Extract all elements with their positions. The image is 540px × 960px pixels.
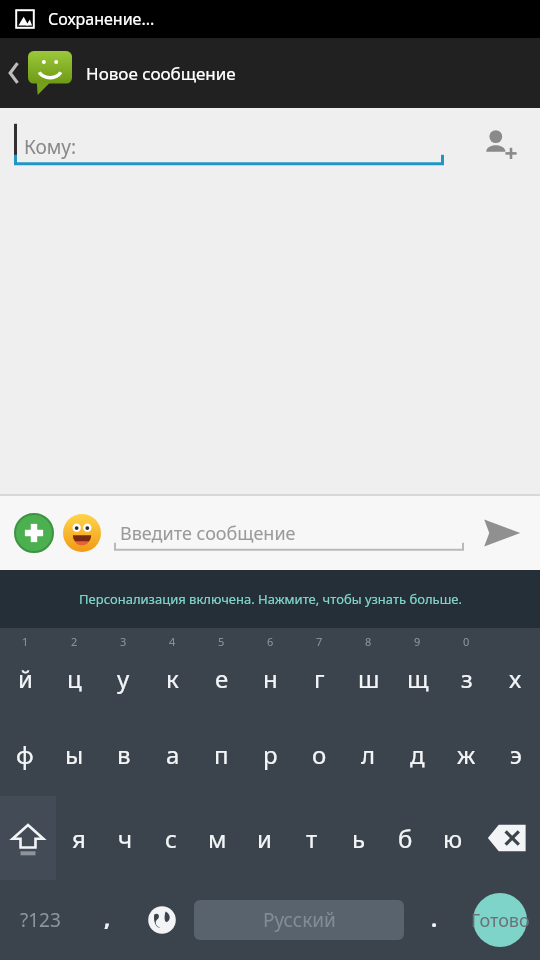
button[interactable]: 3 (99, 628, 148, 712)
staticText: е (215, 662, 229, 695)
button[interactable]: 8 (344, 628, 393, 712)
button[interactable]: ы (50, 712, 99, 796)
button[interactable]: с (148, 796, 194, 880)
button[interactable]: Backspace (476, 796, 540, 880)
staticText: а (166, 738, 180, 771)
button[interactable]: Кому: (14, 119, 444, 175)
button[interactable]: д (393, 712, 442, 796)
staticText: н (263, 662, 278, 695)
button[interactable]: м (194, 796, 241, 880)
button[interactable]: л (344, 712, 393, 796)
staticText: 9 (414, 634, 421, 649)
staticText: х (509, 662, 522, 695)
staticText: 0 (463, 634, 470, 649)
staticText: п (214, 738, 229, 771)
button[interactable]: 5 (197, 628, 246, 712)
staticText: 8 (365, 634, 372, 649)
button[interactable]: в (99, 712, 148, 796)
button[interactable]: б (382, 796, 429, 880)
staticText: ч (118, 822, 133, 855)
button[interactable]: а (148, 712, 197, 796)
staticText: с (165, 822, 177, 855)
button[interactable]: ь (335, 796, 382, 880)
button[interactable]: п (197, 712, 246, 796)
button[interactable]: Готово (460, 880, 540, 960)
staticText: Сохранение... (48, 8, 155, 30)
button[interactable]: 0 (442, 628, 491, 712)
button[interactable]: х (491, 628, 540, 712)
staticText: у (117, 662, 130, 695)
staticText: й (18, 662, 33, 695)
staticText: э (510, 738, 522, 771)
button[interactable]: Back (0, 51, 76, 95)
button[interactable]: ?123 (0, 880, 80, 960)
button[interactable]: и (241, 796, 288, 880)
button[interactable]: Персонализация включена. Нажмите, чтобы … (0, 570, 540, 628)
staticText: в (117, 738, 131, 771)
staticText: Готово (471, 908, 530, 933)
staticText: ш (358, 662, 380, 695)
staticText: 2 (71, 634, 78, 649)
staticText: з (461, 662, 473, 695)
button[interactable]: Shift (0, 796, 56, 880)
staticText: л (361, 738, 376, 771)
staticText: ю (443, 822, 463, 855)
staticText: ь (352, 822, 366, 855)
button[interactable]: э (491, 712, 540, 796)
staticText: щ (407, 662, 429, 695)
button[interactable]: 6 (246, 628, 295, 712)
staticText: 1 (22, 634, 29, 649)
staticText: я (72, 822, 86, 855)
button[interactable]: Add contact (472, 120, 526, 174)
staticText: г (314, 662, 325, 695)
button[interactable]: Введите сообщение (114, 507, 464, 559)
staticText: ц (67, 662, 82, 695)
button[interactable]: 9 (393, 628, 442, 712)
staticText: Кому: (24, 134, 77, 160)
staticText: 4 (169, 634, 176, 649)
button[interactable]: ж (442, 712, 491, 796)
button[interactable]: 4 (148, 628, 197, 712)
staticText: р (263, 738, 278, 771)
button[interactable]: ф (0, 712, 50, 796)
staticText: ф (16, 738, 34, 771)
staticText: к (166, 662, 179, 695)
button[interactable]: Attach (10, 509, 58, 557)
staticText: б (398, 822, 413, 855)
button[interactable]: Change language (134, 880, 190, 960)
button[interactable]: 7 (295, 628, 344, 712)
button[interactable]: 2 (50, 628, 99, 712)
staticText: Новое сообщение (86, 62, 236, 85)
staticText: ?123 (20, 907, 61, 933)
staticText: . (431, 903, 438, 933)
button[interactable]: о (295, 712, 344, 796)
button[interactable]: Send (472, 504, 530, 562)
staticText: 7 (316, 634, 323, 649)
staticText: д (410, 738, 425, 771)
button[interactable]: т (288, 796, 335, 880)
staticText: 5 (218, 634, 225, 649)
button[interactable]: . (408, 880, 460, 960)
staticText: Персонализация включена. Нажмите, чтобы … (79, 590, 462, 608)
button[interactable]: Emoji (58, 509, 106, 557)
staticText: Русский (263, 907, 336, 933)
button[interactable]: р (246, 712, 295, 796)
staticText: Введите сообщение (120, 521, 296, 546)
staticText: 6 (267, 634, 274, 649)
staticText: , (104, 902, 111, 932)
button[interactable]: , (80, 880, 134, 960)
button[interactable]: ю (429, 796, 476, 880)
staticText: и (257, 822, 272, 855)
staticText: ж (457, 738, 476, 771)
staticText: 3 (120, 634, 127, 649)
staticText: ы (65, 738, 84, 771)
staticText: м (208, 822, 227, 855)
staticText: т (306, 822, 318, 855)
button[interactable]: ч (102, 796, 148, 880)
staticText: о (312, 738, 327, 771)
button[interactable]: я (56, 796, 102, 880)
button[interactable]: Русский (194, 900, 404, 940)
button[interactable]: 1 (0, 628, 50, 712)
